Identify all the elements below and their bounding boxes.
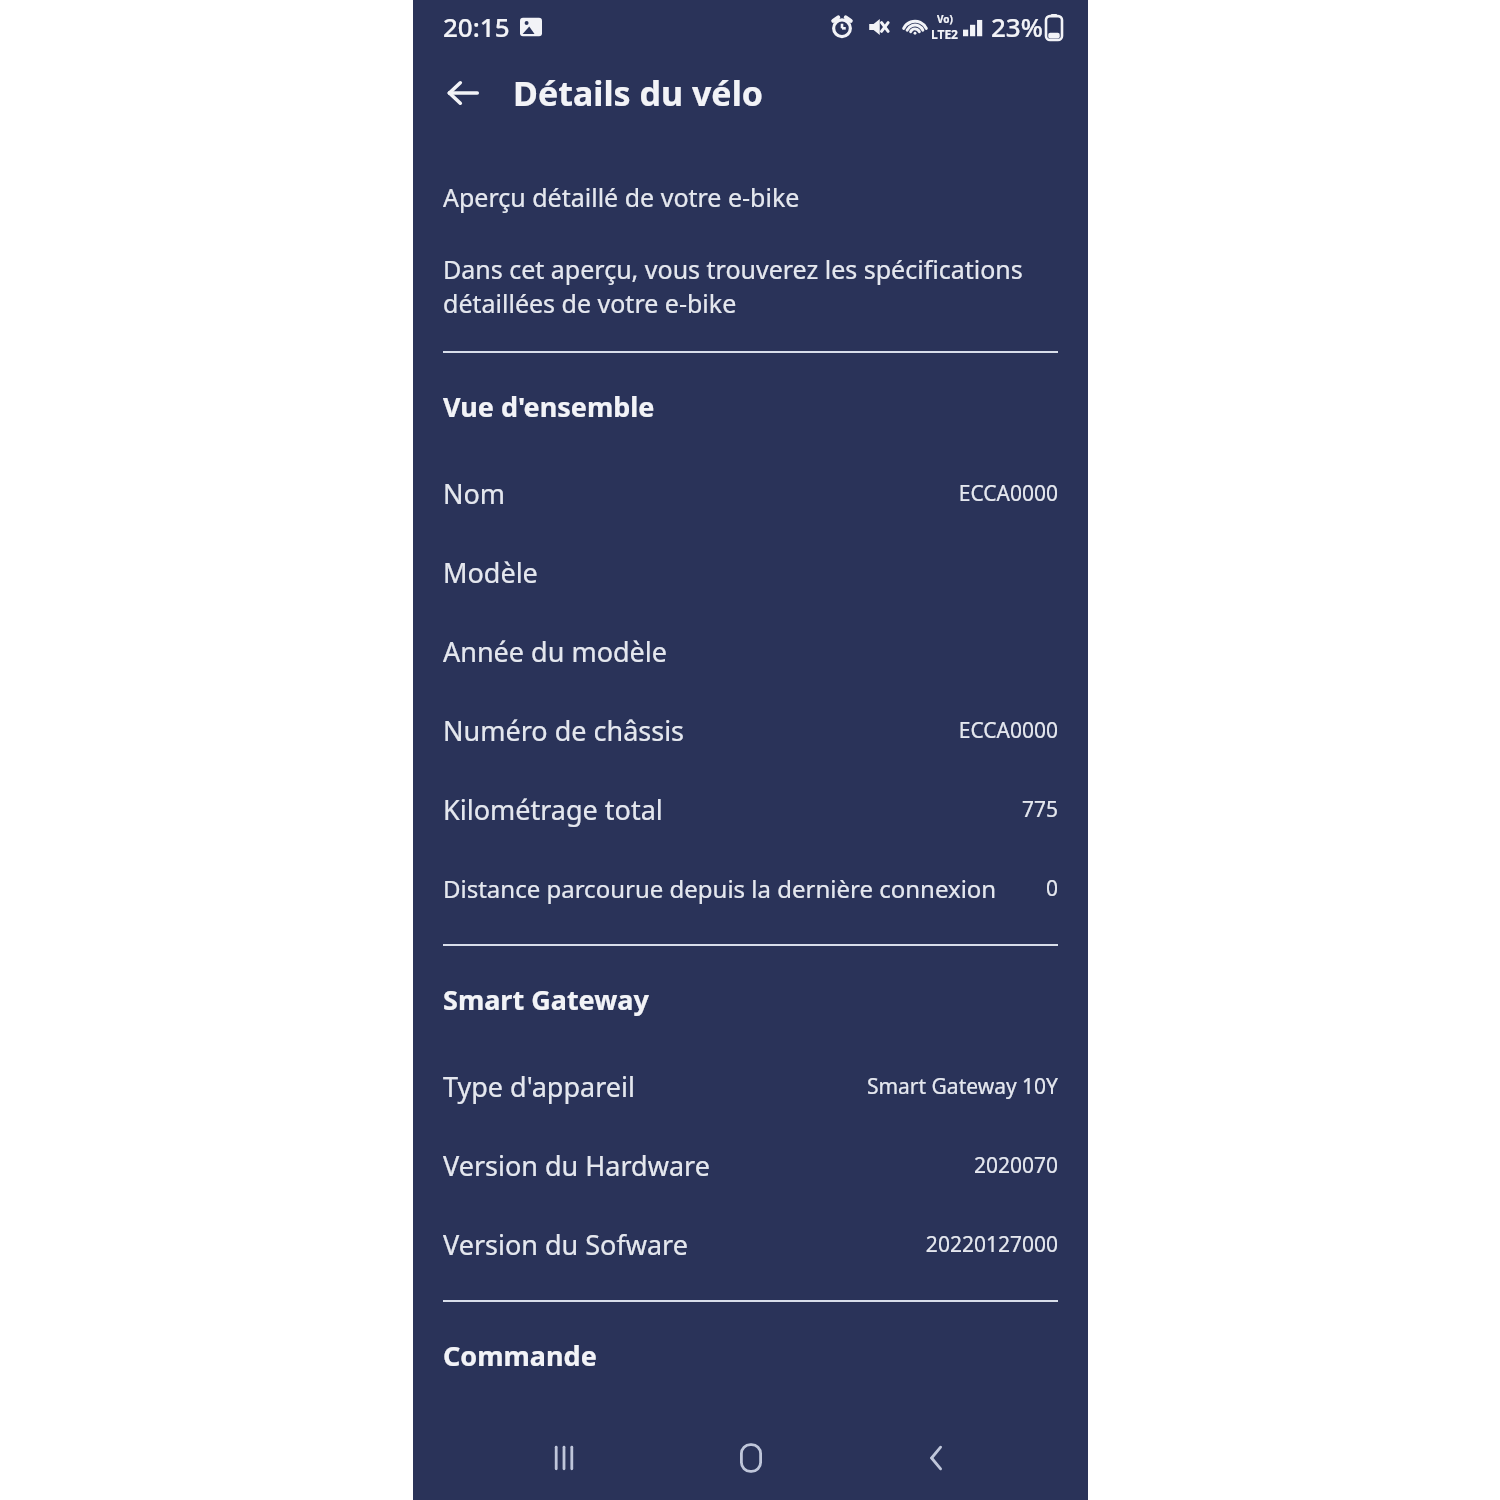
staticText: 2020070: [973, 1151, 1058, 1180]
button[interactable]: Numéro de châssis: [443, 691, 1058, 770]
staticText: Version du Sofware: [443, 1226, 925, 1263]
staticText: Aperçu détaillé de votre e-bike: [443, 180, 800, 214]
staticText: 775: [1021, 795, 1058, 824]
button[interactable]: Kilométrage total: [443, 770, 1058, 849]
button[interactable]: Distance parcourue depuis la dernière co…: [443, 849, 1058, 928]
staticText: Dans cet aperçu, vous trouverez les spéc…: [443, 252, 1058, 320]
staticText: Commande: [443, 1337, 597, 1374]
button[interactable]: Version du Sofware: [443, 1205, 1058, 1284]
button[interactable]: Retour: [901, 1422, 973, 1494]
staticText: Smart Gateway: [443, 981, 649, 1018]
staticText: Vue d'ensemble: [443, 388, 655, 425]
button[interactable]: Accueil: [715, 1422, 787, 1494]
staticText: Version du Hardware: [443, 1147, 973, 1184]
button[interactable]: Année du modèle: [443, 612, 1058, 691]
staticText: ECCA0000: [958, 479, 1058, 508]
staticText: Type d'appareil: [443, 1068, 866, 1105]
staticText: Distance parcourue depuis la dernière co…: [443, 872, 1045, 905]
staticText: Modèle: [443, 554, 1058, 591]
staticText: LTE2: [931, 26, 958, 42]
button[interactable]: Nom: [443, 454, 1058, 533]
button[interactable]: Retour: [435, 65, 491, 121]
button[interactable]: Modèle: [443, 533, 1058, 612]
staticText: ECCA0000: [958, 716, 1058, 745]
staticText: 0: [1045, 874, 1058, 903]
staticText: 23%: [991, 9, 1043, 44]
staticText: Vo): [937, 12, 953, 26]
staticText: Détails du vélo: [513, 70, 764, 116]
staticText: Kilométrage total: [443, 791, 1021, 828]
button[interactable]: Version du Hardware: [443, 1126, 1058, 1205]
button[interactable]: Type d'appareil: [443, 1047, 1058, 1126]
staticText: Nom: [443, 475, 958, 512]
staticText: Année du modèle: [443, 633, 1058, 670]
staticText: 20:15: [443, 9, 510, 44]
staticText: Smart Gateway 10Y: [866, 1072, 1058, 1101]
button[interactable]: Applications récentes: [528, 1422, 600, 1494]
staticText: 20220127000: [925, 1230, 1058, 1259]
staticText: Numéro de châssis: [443, 712, 958, 749]
